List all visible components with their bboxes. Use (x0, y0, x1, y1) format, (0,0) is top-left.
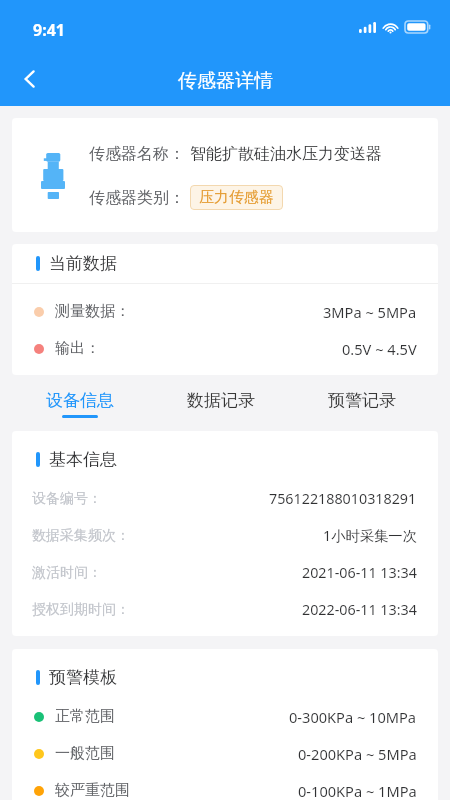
staticText: 9:41 (33, 19, 65, 41)
staticText: 当前数据 (49, 253, 117, 274)
staticText: 756122188010318291 (269, 489, 417, 508)
staticText: 测量数据： (55, 302, 130, 321)
staticText: 设备编号： (32, 490, 102, 508)
button[interactable]: 设备信息 (10, 375, 150, 431)
button[interactable]: Back (10, 59, 50, 99)
staticText: 0.5V ~ 4.5V (342, 339, 417, 359)
staticText: 数据记录 (187, 390, 255, 411)
staticText: 0-100KPa ~ 1MPa (298, 781, 417, 800)
staticText: 激活时间： (32, 564, 102, 582)
staticText: 智能扩散硅油水压力变送器 (190, 144, 382, 164)
staticText: 1小时采集一次 (323, 526, 417, 546)
button[interactable]: 数据记录 (150, 375, 291, 431)
staticText: 正常范围 (55, 707, 115, 726)
staticText: 传感器详情 (178, 69, 273, 93)
staticText: 传感器类别： (89, 188, 185, 208)
staticText: 设备信息 (46, 390, 114, 411)
staticText: 传感器名称： (89, 144, 185, 164)
staticText: 2022-06-11 13:34 (302, 600, 417, 619)
staticText: 一般范围 (55, 744, 115, 763)
staticText: 预警记录 (328, 390, 396, 411)
staticText: 压力传感器 (199, 188, 274, 207)
staticText: 预警模板 (49, 667, 117, 688)
button[interactable]: 预警记录 (291, 375, 432, 431)
staticText: 数据采集频次： (32, 527, 130, 545)
staticText: 0-300KPa ~ 10MPa (289, 707, 417, 727)
staticText: 较严重范围 (55, 781, 130, 800)
staticText: 输出： (55, 339, 100, 358)
staticText: 3MPa ~ 5MPa (323, 302, 417, 322)
staticText: 基本信息 (49, 449, 117, 470)
staticText: 授权到期时间： (32, 601, 130, 619)
staticText: 0-200KPa ~ 5MPa (298, 744, 417, 764)
staticText: 2021-06-11 13:34 (302, 563, 417, 582)
